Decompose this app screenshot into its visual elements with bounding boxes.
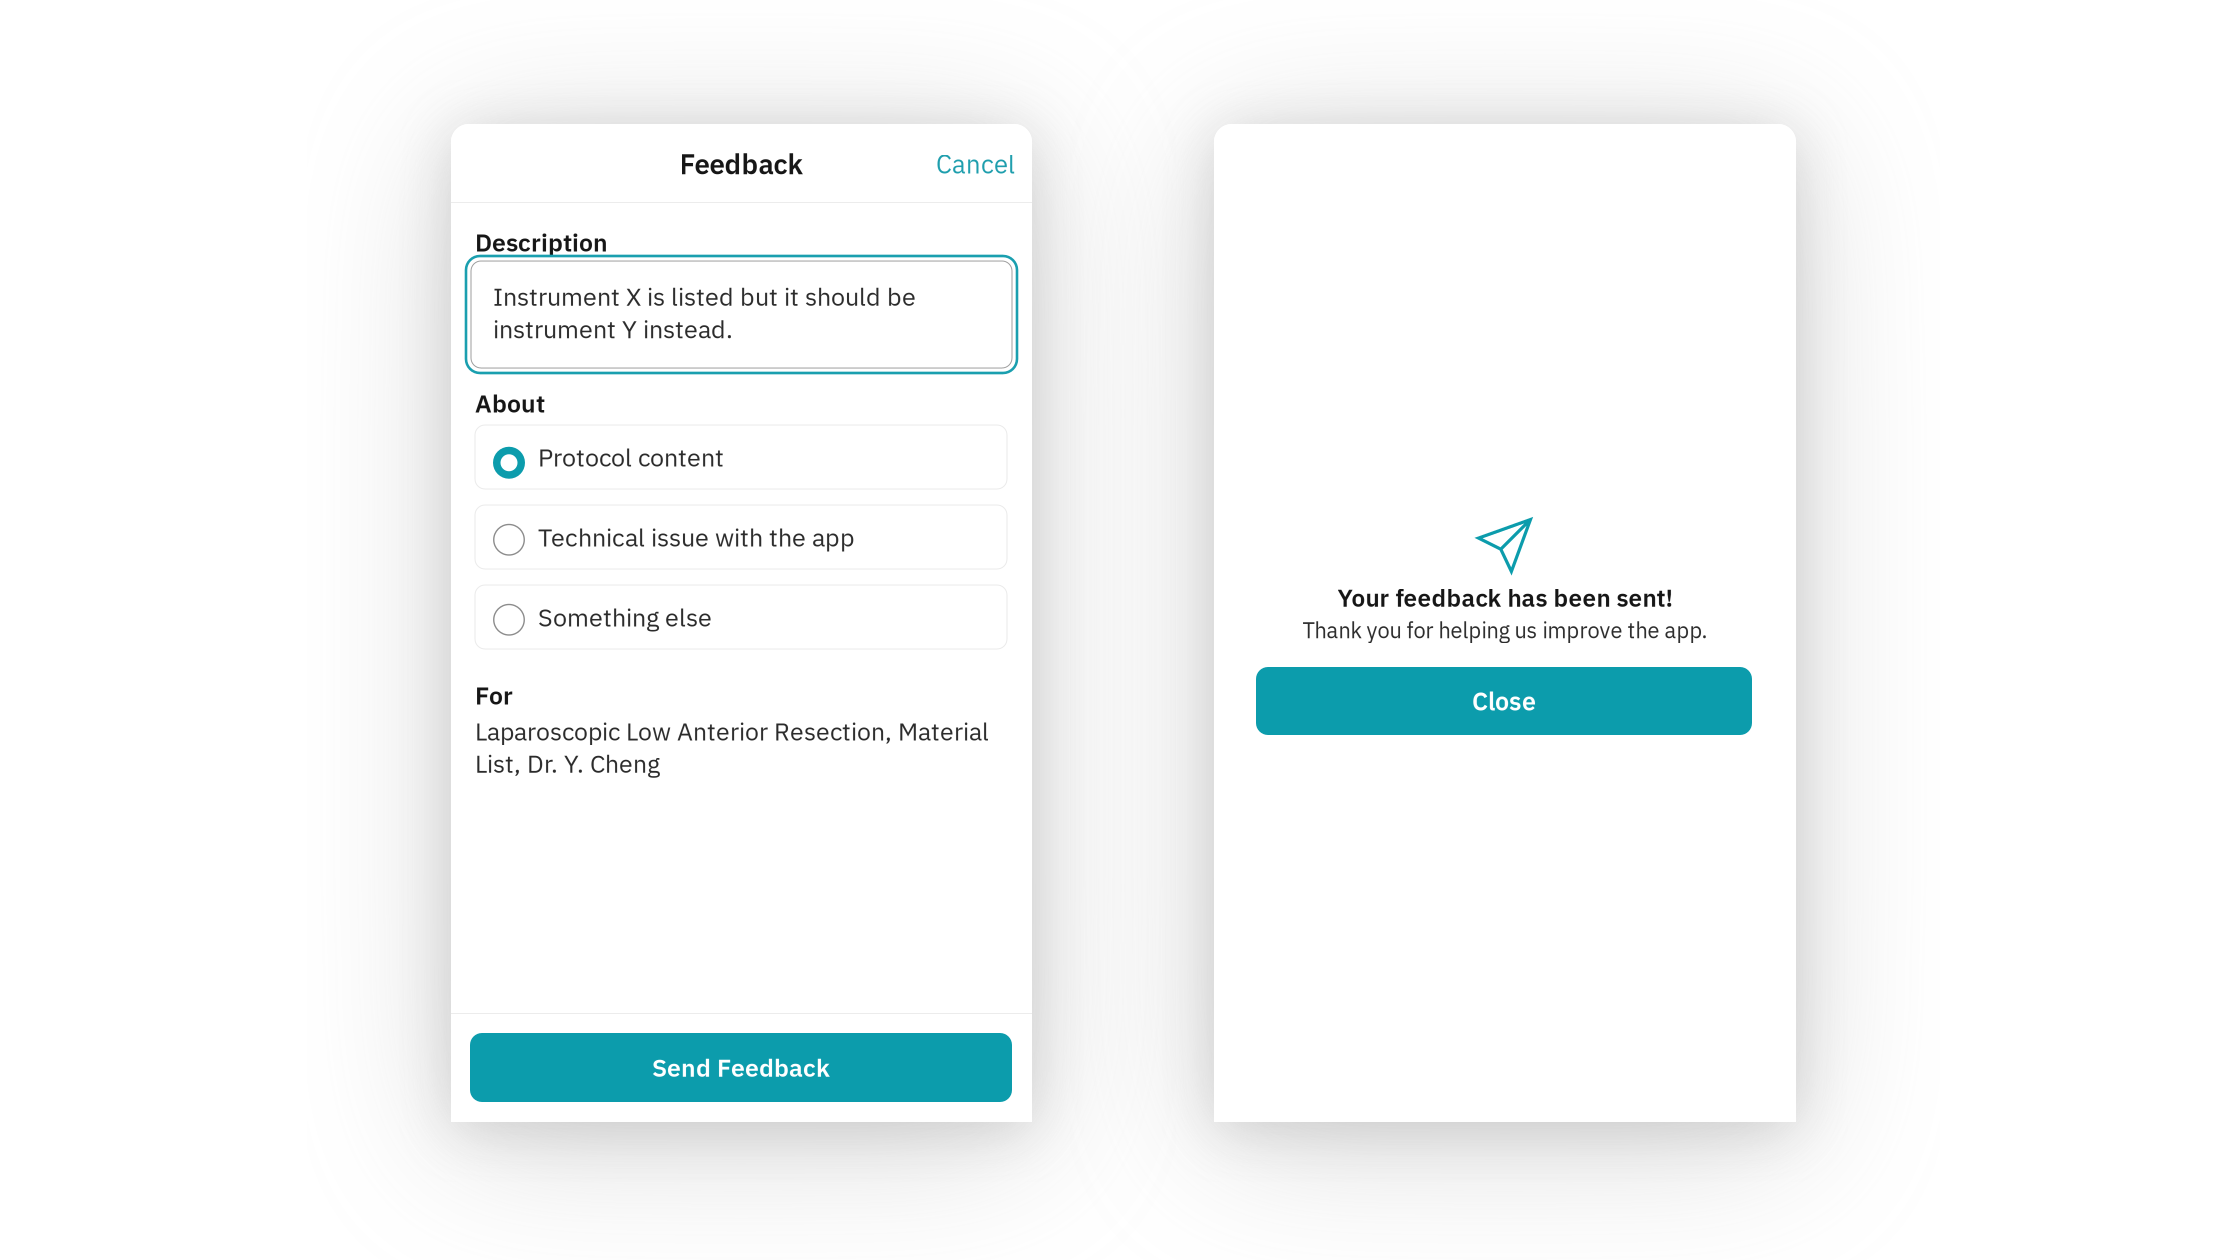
button[interactable]: Something else — [475, 585, 1007, 649]
staticText: Something else — [538, 601, 712, 633]
staticText: Feedback — [679, 146, 803, 182]
button[interactable]: Cancel — [895, 140, 1032, 188]
staticText: Protocol content — [538, 441, 724, 473]
staticText: Send Feedback — [652, 1051, 830, 1084]
staticText: Thank you for helping us improve the app… — [1302, 616, 1707, 644]
staticText: Your feedback has been sent! — [1337, 582, 1672, 613]
staticText: Laparoscopic Low Anterior Resection, Mat… — [475, 715, 989, 779]
button[interactable]: Protocol content — [475, 425, 1007, 489]
staticText: Instrument X is listed but it should be … — [493, 280, 916, 345]
button[interactable]: Send Feedback — [470, 1033, 1012, 1102]
staticText: About — [475, 387, 545, 419]
button[interactable]: Close — [1256, 667, 1752, 735]
button[interactable]: Instrument X is listed but it should be … — [466, 256, 1017, 373]
staticText: Technical issue with the app — [538, 521, 855, 553]
staticText: Cancel — [936, 147, 1015, 181]
staticText: Close — [1472, 685, 1536, 717]
button[interactable]: Technical issue with the app — [475, 505, 1007, 569]
staticText: For — [475, 679, 513, 711]
staticText: Description — [475, 226, 608, 258]
